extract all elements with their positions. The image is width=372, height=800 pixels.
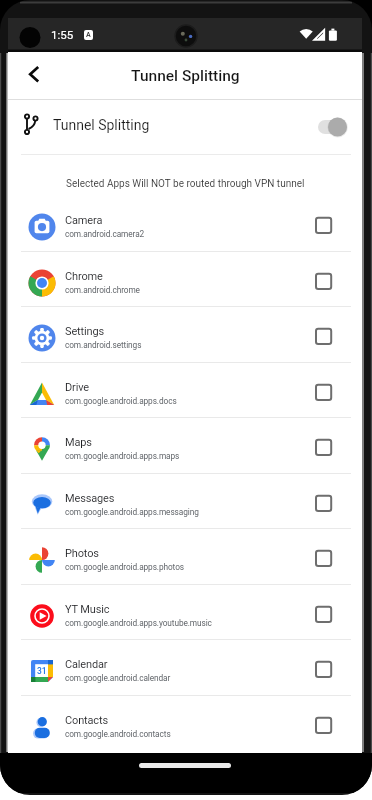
button[interactable] [311,491,339,519]
button[interactable] [311,602,339,630]
button[interactable] [311,546,339,574]
button[interactable]: Camera [8,195,362,251]
button[interactable] [311,269,339,297]
staticText: com.android.camera2 [65,229,145,239]
button[interactable] [311,713,339,741]
staticText: Chrome [65,270,103,283]
staticText: com.google.android.contacts [65,729,171,739]
button[interactable] [313,114,353,140]
button[interactable]: Messages [8,473,362,529]
button[interactable] [20,59,48,87]
button[interactable] [311,657,339,685]
button[interactable]: Settings [8,306,362,362]
staticText: 1:55 [51,28,74,41]
staticText: com.google.android.apps.messaging [65,507,199,517]
staticText: Settings [65,325,104,338]
staticText: 31 [37,666,47,676]
staticText: com.google.android.calendar [65,673,171,683]
button[interactable]: Drive [8,362,362,418]
staticText: YT Music [65,603,110,616]
staticText: com.android.chrome [65,285,140,295]
button[interactable]: Contacts [8,695,362,751]
button[interactable]: Maps [8,417,362,473]
staticText: Tunnel Splitting [53,117,150,133]
staticText: Messages [65,492,115,505]
button[interactable]: Photos [8,528,362,584]
staticText: Camera [65,214,103,227]
button[interactable]: Calendar [8,639,362,695]
staticText: com.google.android.apps.maps [65,451,180,461]
button[interactable]: Chrome [8,251,362,307]
staticText: A [86,31,91,39]
button[interactable] [311,435,339,463]
button[interactable]: YT Music [8,584,362,640]
button[interactable] [311,213,339,241]
staticText: Drive [65,381,89,394]
staticText: com.google.android.apps.photos [65,562,184,572]
button[interactable] [311,380,339,408]
staticText: com.google.android.apps.docs [65,396,177,406]
staticText: com.google.android.apps.youtube.music [65,618,212,628]
staticText: Maps [65,436,92,449]
button[interactable] [311,324,339,352]
staticText: Photos [65,547,99,560]
staticText: Selected Apps Will NOT be routed through… [66,178,305,190]
staticText: Calendar [65,658,108,671]
button[interactable]: Tunnel Splitting [8,100,362,153]
staticText: Tunnel Splitting [131,67,240,85]
staticText: Contacts [65,714,108,727]
staticText: com.android.settings [65,340,142,350]
